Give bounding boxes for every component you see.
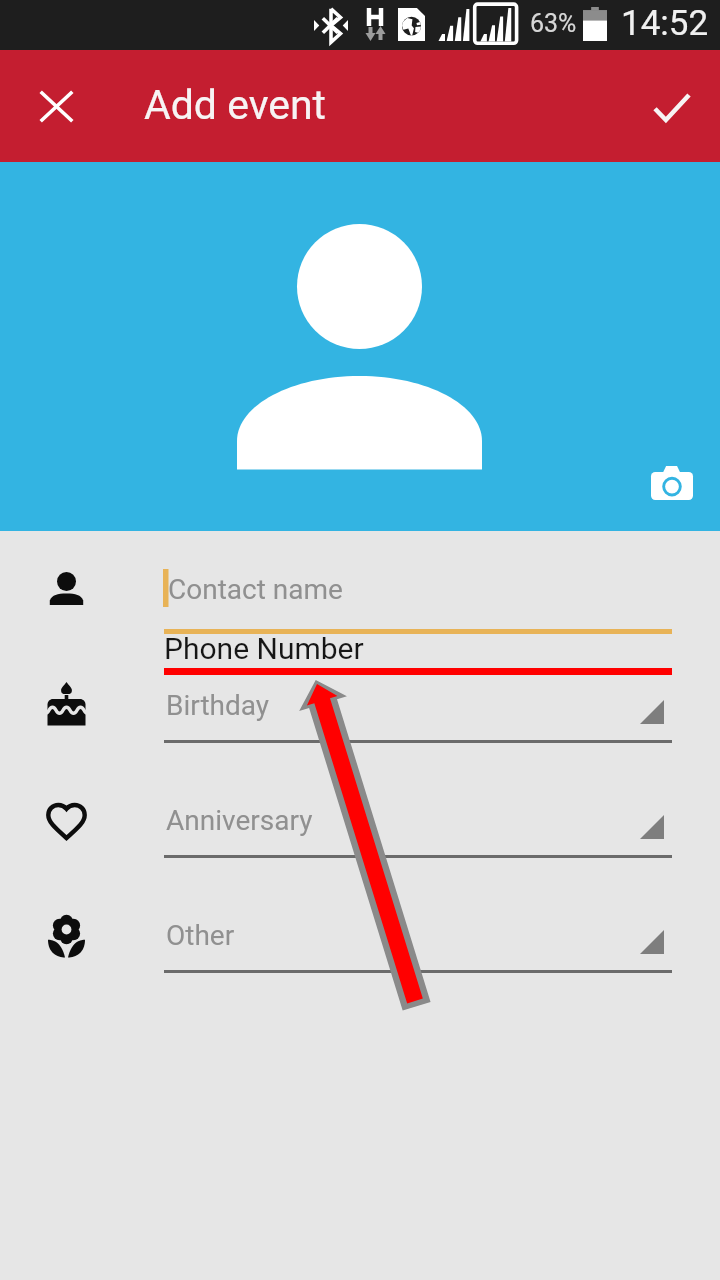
button[interactable]: Anniversary [0, 789, 720, 851]
staticText: 14:52 [621, 3, 709, 44]
button[interactable]: Save [627, 62, 717, 152]
button[interactable]: Change photo [640, 451, 704, 515]
button[interactable]: Close [11, 61, 101, 151]
staticText: 63% [530, 9, 577, 38]
staticText: Anniversary [166, 804, 313, 837]
button[interactable]: Birthday [0, 674, 720, 736]
staticText: Phone Number [164, 631, 364, 666]
staticText: Birthday [166, 689, 270, 722]
button[interactable]: Contact name [0, 555, 720, 623]
staticText: Add event [144, 81, 327, 129]
button[interactable]: Phone Number [0, 627, 720, 669]
staticText: Other [166, 919, 235, 952]
button[interactable]: Other [0, 904, 720, 966]
staticText: Contact name [168, 573, 343, 606]
